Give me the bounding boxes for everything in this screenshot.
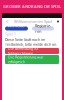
staticText: Willkommen im Spiel bbox=[14, 19, 52, 24]
staticText: Diese Seite läuft noch im Testbetrieb, b… bbox=[5, 37, 57, 47]
staticText: Die Anmeldung ist fehlgeschlagen bbox=[8, 46, 38, 56]
button[interactable]: Registrieren bbox=[32, 26, 54, 30]
staticText: Anmelden bbox=[8, 23, 25, 34]
staticText: GROSSER ANDRANG IM SPIEL bbox=[3, 4, 61, 9]
button[interactable]: More bbox=[57, 20, 59, 22]
staticText: Registrieren bbox=[35, 23, 51, 34]
button[interactable]: Anmelden bbox=[5, 26, 28, 30]
staticText: < bbox=[5, 18, 8, 25]
button[interactable]: Back bbox=[5, 19, 9, 24]
staticText: Die Registrierung war erfolgreich bbox=[8, 55, 43, 64]
staticText: Spiel 1 bbox=[5, 32, 16, 36]
